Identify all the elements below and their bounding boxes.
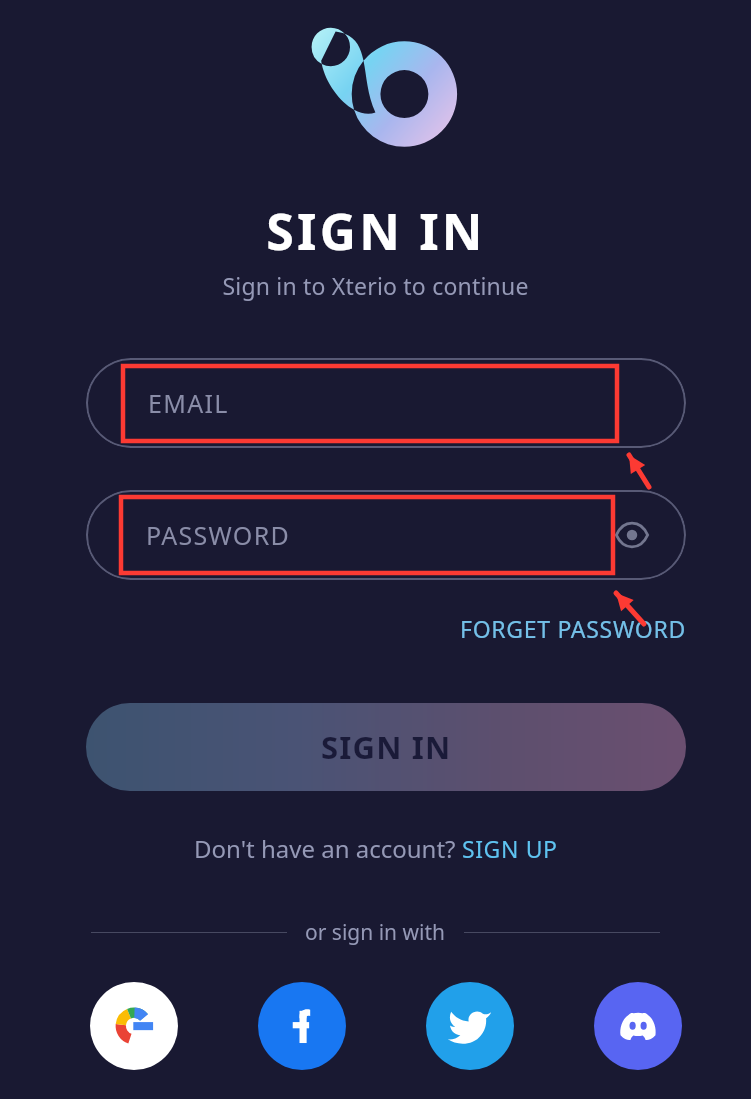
staticText: SIGN UP <box>462 833 558 864</box>
button[interactable]: Sign in with Google <box>90 982 178 1070</box>
button[interactable]: Sign in with Discord <box>594 982 682 1070</box>
staticText: SIGN IN <box>321 726 452 768</box>
button[interactable]: Sign in with Facebook <box>258 982 346 1070</box>
button[interactable]: SIGN UP <box>462 833 558 864</box>
staticText: Don't have an account? <box>194 832 462 865</box>
staticText: EMAIL <box>148 386 229 420</box>
button[interactable]: SIGN IN <box>86 703 686 791</box>
button[interactable]: Show password <box>612 515 652 555</box>
staticText: Sign in to Xterio to continue <box>222 270 529 301</box>
button[interactable]: PASSWORD <box>86 490 686 580</box>
button[interactable]: FORGET PASSWORD <box>330 613 686 643</box>
staticText: PASSWORD <box>146 518 291 552</box>
button[interactable]: EMAIL <box>86 358 686 448</box>
button[interactable]: Sign in with Twitter <box>426 982 514 1070</box>
staticText: or sign in with <box>305 918 446 947</box>
staticText: FORGET PASSWORD <box>460 613 686 643</box>
staticText: SIGN IN <box>266 197 486 265</box>
